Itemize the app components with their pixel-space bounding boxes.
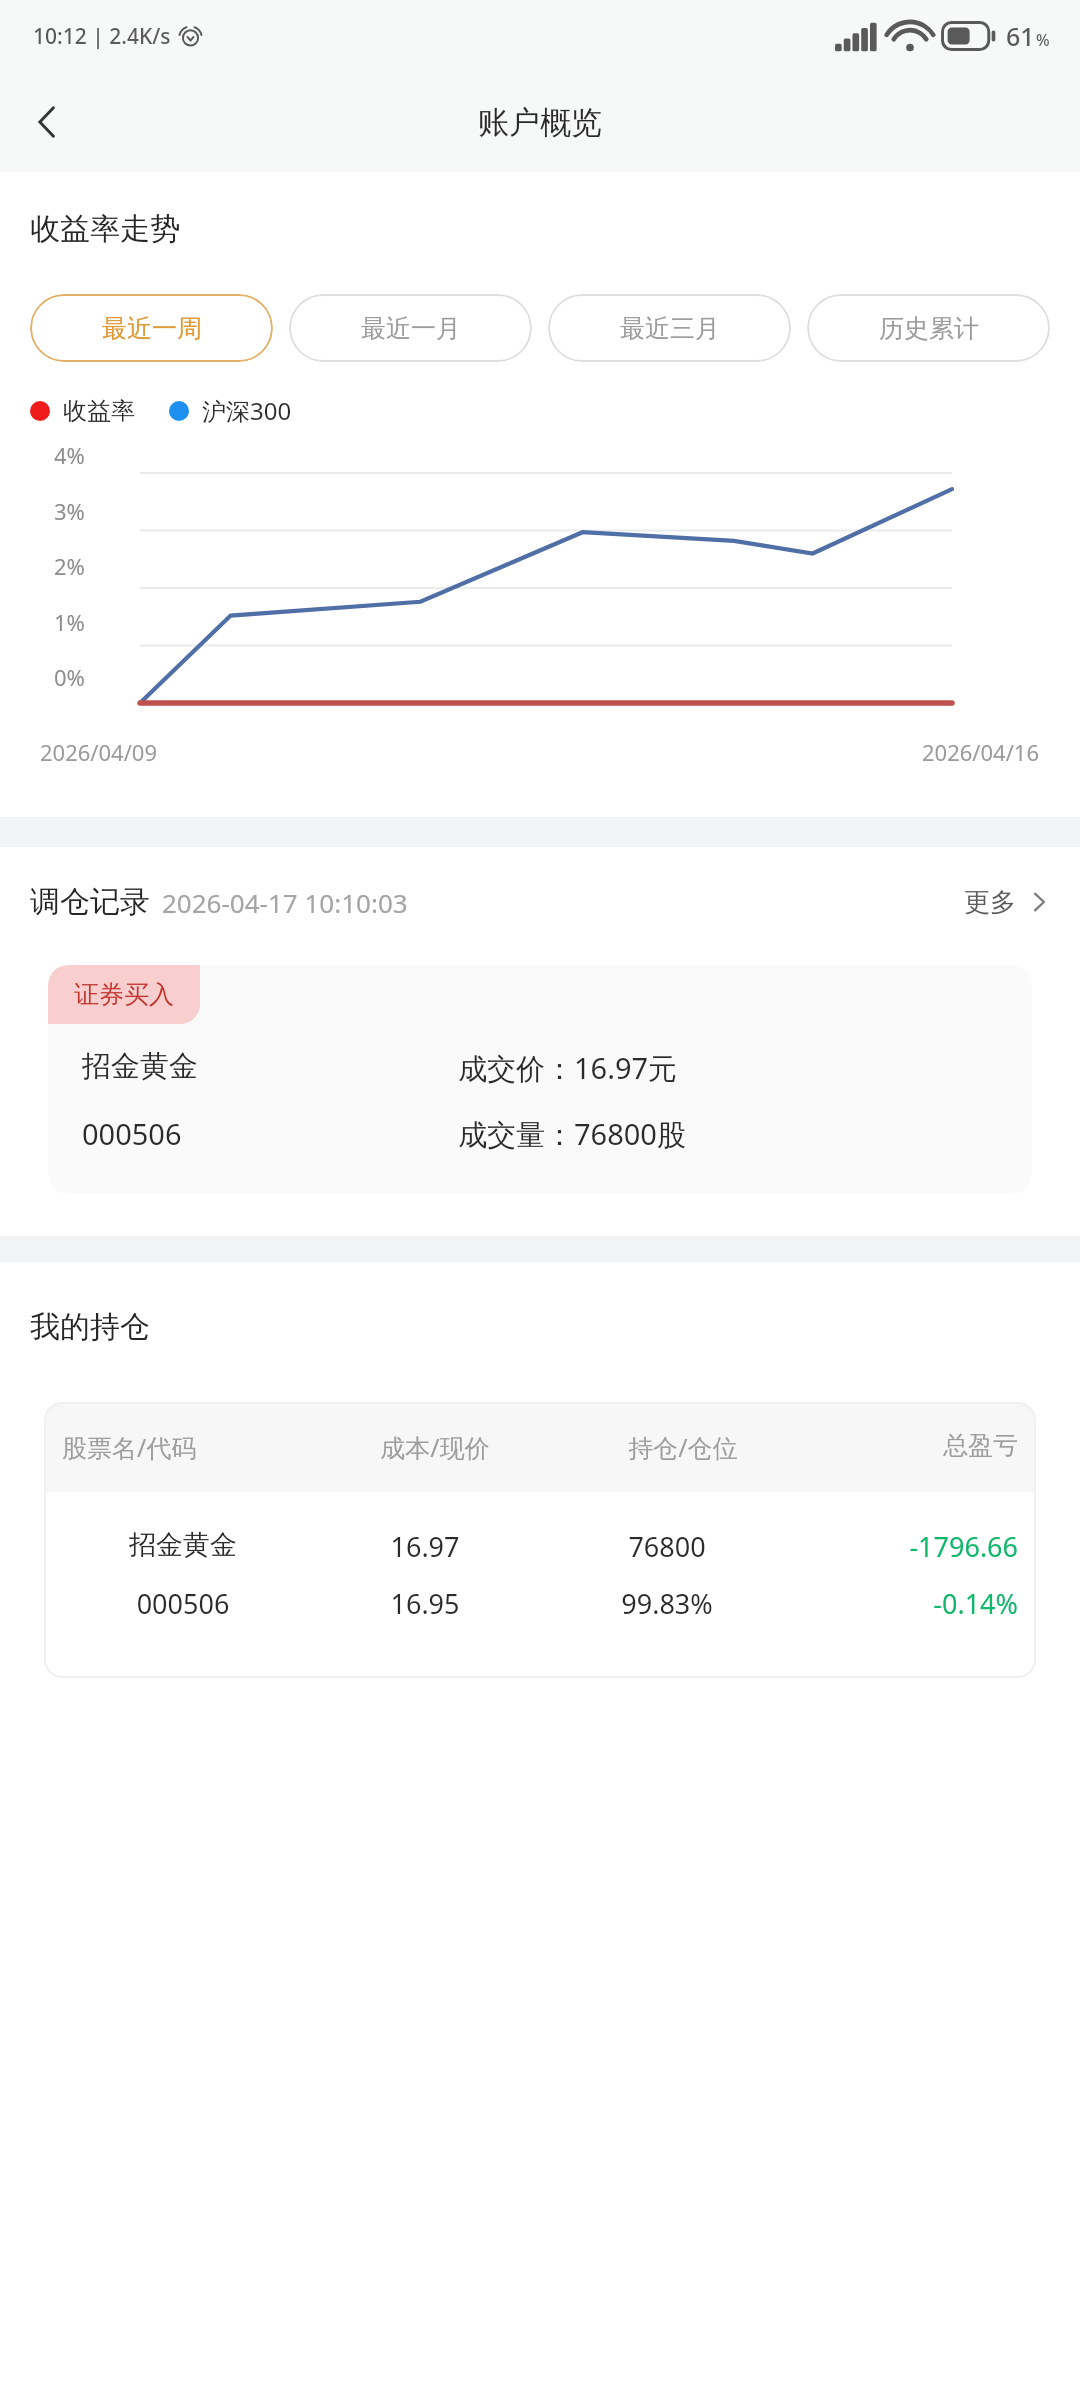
staticText: 总盈亏 xyxy=(807,1430,1018,1461)
button[interactable]: 证券买入 xyxy=(48,965,1032,1194)
button[interactable]: 最近一月 xyxy=(289,294,532,362)
staticText: 000506 xyxy=(82,1114,458,1153)
staticText: % xyxy=(1036,29,1050,51)
button[interactable]: 历史累计 xyxy=(807,294,1050,362)
staticText: 1% xyxy=(54,607,85,637)
staticText: 3% xyxy=(54,496,85,526)
staticText: 76800 xyxy=(546,1528,788,1565)
staticText: 成交量：76800股 xyxy=(458,1114,1002,1154)
staticText: 16.97 xyxy=(304,1528,546,1565)
staticText: 0% xyxy=(54,662,85,692)
staticText: 2026/04/09 xyxy=(40,737,158,767)
staticText: 最近一周 xyxy=(102,313,202,344)
staticText: -0.14% xyxy=(788,1585,1018,1622)
staticText: 招金黄金 xyxy=(62,1528,304,1562)
button[interactable]: 最近一周 xyxy=(30,294,273,362)
button[interactable]: Back xyxy=(0,74,96,170)
staticText: 最近一月 xyxy=(361,313,461,344)
staticText: 证券买入 xyxy=(74,979,174,1010)
staticText: 2026/04/16 xyxy=(922,737,1040,767)
staticText: 000506 xyxy=(62,1585,304,1622)
staticText: 更多 xyxy=(964,886,1016,919)
staticText: 持仓/仓位 xyxy=(559,1430,807,1464)
staticText: 收益率 xyxy=(63,396,135,426)
staticText: 99.83% xyxy=(546,1585,788,1622)
staticText: 61 xyxy=(1006,19,1035,53)
staticText: 历史累计 xyxy=(879,313,979,344)
staticText: 沪深300 xyxy=(202,394,292,427)
staticText: 账户概览 xyxy=(478,103,602,142)
button[interactable]: 最近三月 xyxy=(548,294,791,362)
button[interactable]: 调仓记录 xyxy=(30,883,1050,921)
staticText: 我的持仓 xyxy=(30,1308,150,1346)
staticText: 2026-04-17 10:10:03 xyxy=(162,885,408,920)
staticText: 成交价：16.97元 xyxy=(458,1048,1002,1088)
staticText: 招金黄金 xyxy=(82,1048,458,1085)
staticText: 调仓记录 xyxy=(30,883,150,921)
staticText: 4% xyxy=(54,440,85,470)
staticText: 收益率走势 xyxy=(30,210,180,248)
staticText: -1796.66 xyxy=(788,1528,1018,1565)
staticText: 成本/现价 xyxy=(311,1430,559,1464)
staticText: 16.95 xyxy=(304,1585,546,1622)
staticText: 股票名/代码 xyxy=(62,1430,311,1464)
staticText: 2% xyxy=(54,551,85,581)
staticText: 最近三月 xyxy=(620,313,720,344)
staticText: 10:12 | 2.4K/s xyxy=(33,22,171,51)
